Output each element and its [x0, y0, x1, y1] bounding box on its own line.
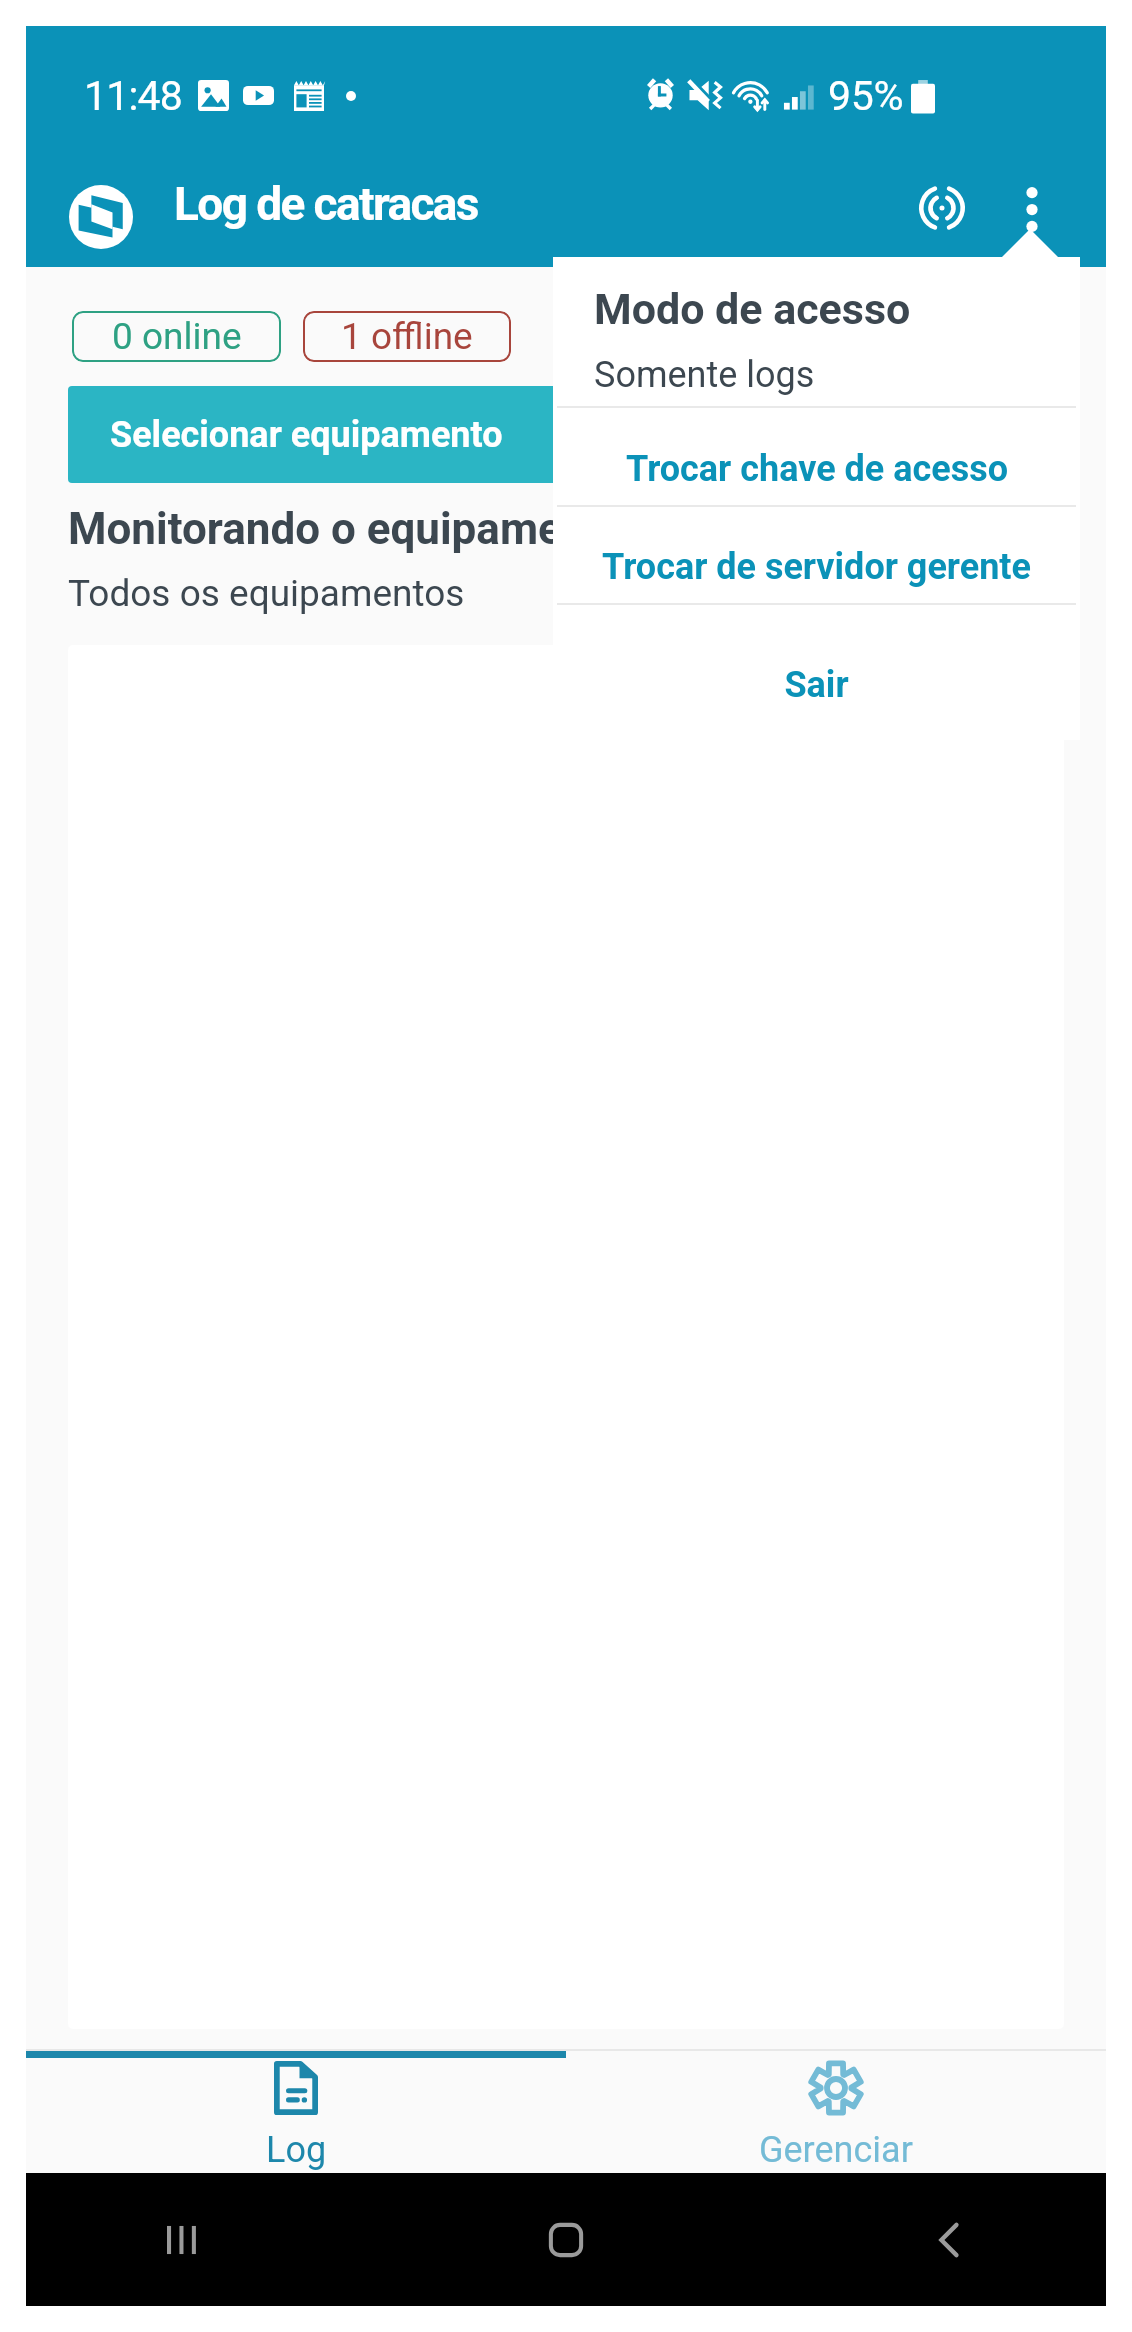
button[interactable]: More options [980, 159, 1084, 260]
staticText: 95% [828, 72, 904, 120]
staticText: 11:48 [84, 72, 183, 120]
staticText: 1 offline [341, 315, 473, 358]
staticText: Gerenciar [759, 2129, 913, 2171]
button[interactable]: Home [520, 2194, 612, 2286]
button[interactable]: Trocar de servidor gerente [553, 507, 1080, 603]
staticText: Somente logs [594, 354, 815, 396]
button[interactable]: Trocar chave de acesso [553, 408, 1080, 505]
button[interactable]: 1 offline [303, 311, 511, 362]
staticText: 0 online [112, 315, 242, 358]
staticText: Selecionar equipamento [110, 414, 503, 456]
button[interactable]: Recents [136, 2194, 228, 2286]
button[interactable]: Sair [553, 605, 1080, 740]
staticText: Sair [784, 664, 849, 706]
button[interactable]: Broadcast [890, 157, 994, 258]
staticText: Modo de acesso [594, 284, 911, 334]
button[interactable]: 0 online [72, 311, 281, 362]
staticText: Log de catracas [174, 177, 478, 231]
button[interactable]: Back [904, 2194, 996, 2286]
button[interactable]: Gerenciar [566, 2051, 1106, 2173]
staticText: Trocar chave de acesso [626, 448, 1008, 490]
button[interactable]: Log [26, 2051, 566, 2173]
button[interactable]: Selecionar equipamento [68, 386, 1064, 483]
staticText: Todos os equipamentos [68, 572, 465, 615]
staticText: Monitorando o equipamento [68, 503, 626, 555]
staticText: Trocar de servidor gerente [602, 546, 1031, 588]
staticText: Log [266, 2129, 327, 2171]
